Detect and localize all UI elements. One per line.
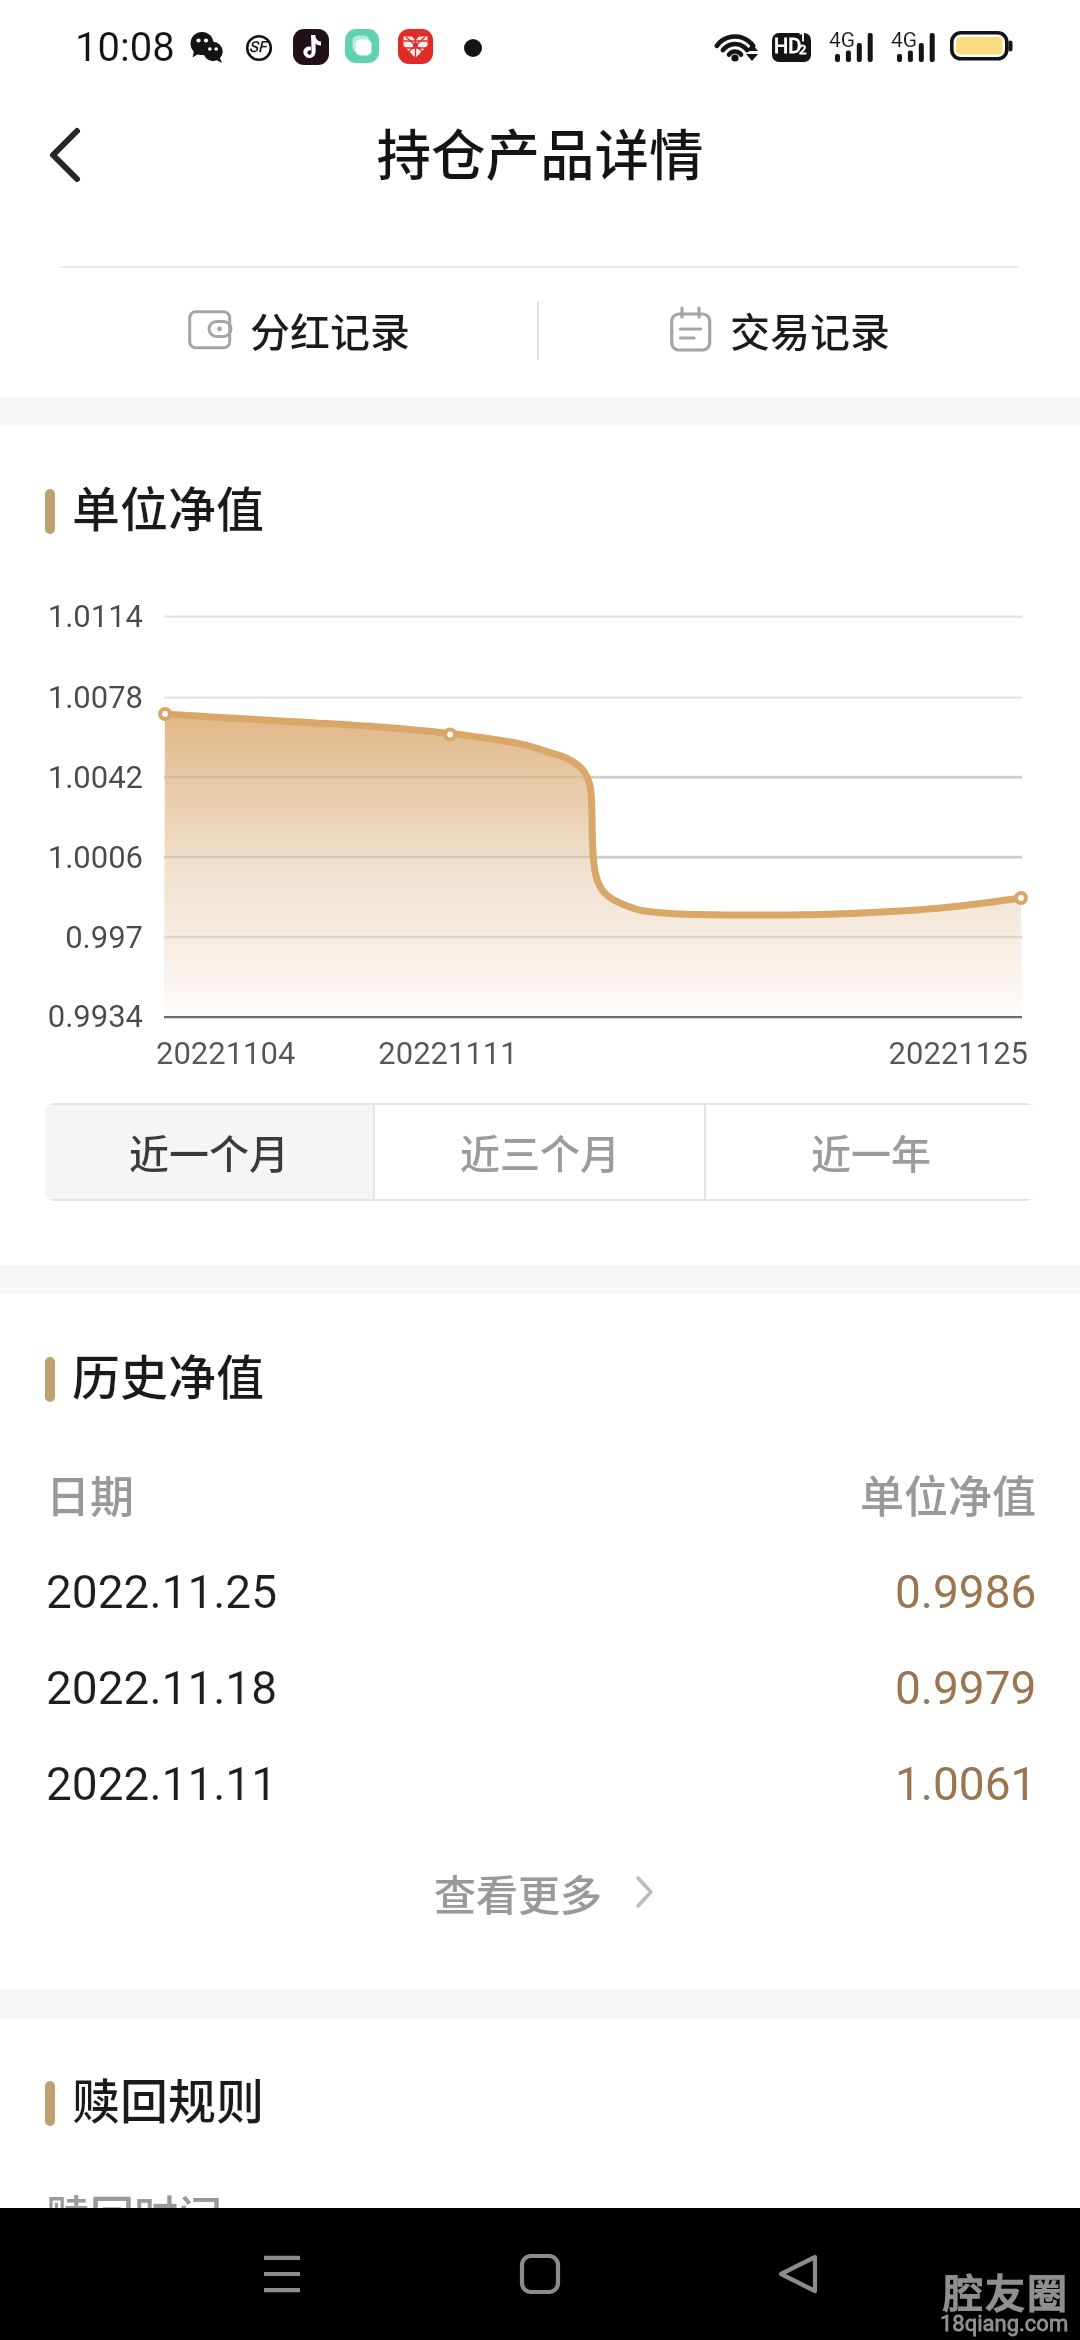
button[interactable]: 2022.11.25 [0, 1545, 1080, 1639]
staticText: 0.9986 [895, 1565, 1037, 1619]
staticText: 20221111 [368, 1035, 528, 1071]
button[interactable]: 分红记录 [188, 280, 448, 380]
staticText: 历史净值 [72, 1339, 265, 1409]
button[interactable]: 2022.11.18 [0, 1641, 1080, 1735]
staticText: 1.0078 [0, 679, 143, 715]
button[interactable]: 近一年 [706, 1105, 1035, 1199]
staticText: 2 [799, 42, 807, 57]
staticText: 20221125 [868, 1035, 1028, 1071]
button[interactable]: 近一个月 [45, 1105, 373, 1199]
staticText: 0.9979 [895, 1661, 1037, 1715]
staticText: 单位净值 [0, 1462, 1036, 1526]
button[interactable]: Back [758, 2208, 838, 2340]
staticText: HD [774, 34, 802, 57]
staticText: 持仓产品详情 [0, 112, 1080, 191]
staticText: 单位净值 [72, 471, 265, 541]
staticText: SF [249, 38, 267, 56]
staticText: 0.997 [0, 919, 143, 955]
button[interactable]: 查看更多 [5, 1856, 1080, 1928]
staticText: 20221104 [156, 1035, 296, 1071]
button[interactable]: 2022.11.11 [0, 1737, 1080, 1831]
staticText: 4G [891, 28, 918, 53]
staticText: 近一个月 [129, 1123, 289, 1181]
staticText: 日期 [46, 1462, 134, 1526]
button[interactable]: 交易记录 [670, 280, 930, 380]
staticText: 1 [799, 33, 807, 44]
staticText: 近一年 [811, 1123, 931, 1181]
button[interactable]: 近三个月 [375, 1105, 704, 1199]
staticText: 10:08 [75, 24, 175, 71]
staticText: 0.9934 [0, 998, 143, 1034]
staticText: 近三个月 [460, 1123, 620, 1181]
staticText: 分红记录 [250, 301, 410, 359]
staticText: 2022.11.18 [46, 1661, 278, 1715]
staticText: 4G [829, 28, 856, 53]
staticText: 赎回规则 [72, 2063, 265, 2133]
staticText: 赎回时间 [46, 2182, 222, 2246]
staticText: 18qiang.com [940, 2311, 1069, 2337]
staticText: 交易记录 [730, 301, 890, 359]
button[interactable]: Home [500, 2208, 580, 2340]
staticText: 2022.11.11 [46, 1757, 278, 1811]
staticText: 1.0114 [0, 598, 143, 634]
staticText: 1.0042 [0, 759, 143, 795]
staticText: 查看更多 [434, 1862, 603, 1923]
button[interactable]: Recent apps [243, 2208, 323, 2340]
staticText: 1.0061 [895, 1757, 1037, 1811]
staticText: 腔友圈 [943, 2262, 1069, 2320]
staticText: 1.0006 [0, 839, 143, 875]
button[interactable]: Back [16, 106, 108, 198]
staticText: 2022.11.25 [46, 1565, 278, 1619]
